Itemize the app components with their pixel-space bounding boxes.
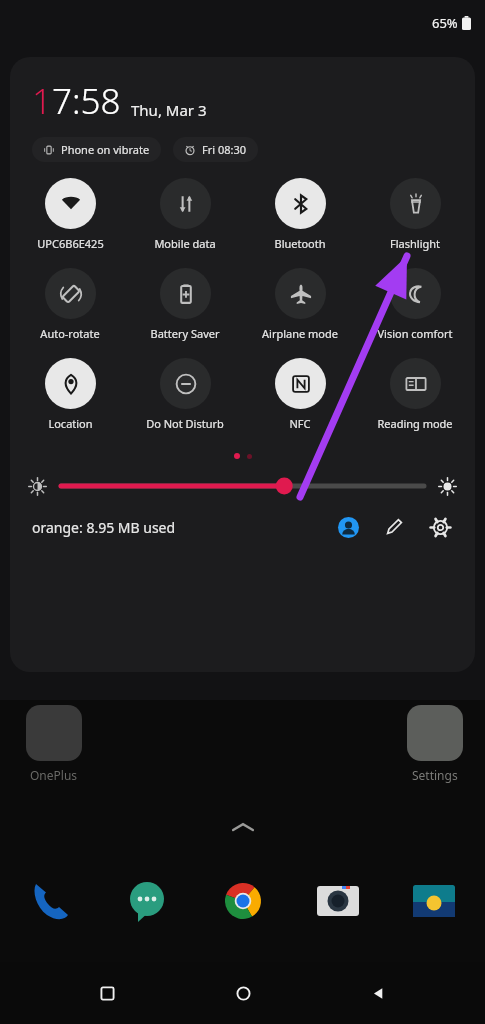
button[interactable] bbox=[407, 705, 463, 761]
staticText: NFC bbox=[289, 416, 311, 431]
staticText: 7:58 bbox=[52, 77, 121, 125]
staticText: Auto-rotate bbox=[40, 326, 100, 341]
staticText: Airplane mode bbox=[262, 326, 338, 341]
button[interactable]: Phone on vibrate bbox=[32, 137, 161, 162]
staticText: Do Not Disturb bbox=[146, 416, 224, 431]
staticText: UPC6B6E425 bbox=[37, 236, 104, 251]
button[interactable]: Airplane mode bbox=[245, 266, 355, 343]
button[interactable]: photos bbox=[405, 872, 463, 930]
staticText: Reading mode bbox=[377, 416, 453, 431]
staticText: Flashlight bbox=[390, 236, 440, 251]
button[interactable]: Auto-rotate bbox=[15, 266, 125, 343]
staticText: Location bbox=[48, 416, 93, 431]
button[interactable]: messages bbox=[118, 872, 176, 930]
button[interactable] bbox=[61, 476, 424, 496]
button[interactable]: phone bbox=[22, 872, 80, 930]
button[interactable]: Recent apps bbox=[79, 965, 135, 1021]
staticText: 65% bbox=[432, 14, 458, 32]
staticText: Mobile data bbox=[154, 236, 216, 251]
button[interactable]: Battery Saver bbox=[130, 266, 240, 343]
button[interactable]: Settings bbox=[423, 510, 457, 544]
staticText: OnePlus bbox=[30, 767, 78, 783]
staticText: Battery Saver bbox=[150, 326, 220, 341]
button[interactable]: camera bbox=[309, 872, 367, 930]
button[interactable]: Fri 08:30 bbox=[173, 137, 258, 162]
button[interactable]: Back bbox=[350, 965, 406, 1021]
staticText: Phone on vibrate bbox=[61, 142, 150, 157]
button[interactable]: Mobile data bbox=[130, 176, 240, 253]
staticText: Settings bbox=[412, 767, 458, 783]
button[interactable]: Home bbox=[215, 965, 271, 1021]
button[interactable]: Vision comfort bbox=[360, 266, 470, 343]
staticText: Thu, Mar 3 bbox=[131, 100, 207, 120]
button[interactable]: Reading mode bbox=[360, 356, 470, 433]
button[interactable]: Do Not Disturb bbox=[130, 356, 240, 433]
button[interactable] bbox=[26, 705, 82, 761]
button[interactable]: Edit tiles bbox=[377, 510, 411, 544]
button[interactable]: User account bbox=[331, 510, 365, 544]
button[interactable]: Open app drawer bbox=[230, 820, 256, 834]
staticText: orange: 8.95 MB used bbox=[32, 518, 176, 537]
staticText: Fri 08:30 bbox=[202, 142, 247, 157]
button[interactable]: NFC bbox=[245, 356, 355, 433]
button[interactable]: UPC6B6E425 bbox=[15, 176, 125, 253]
staticText: 1 bbox=[32, 77, 52, 125]
button[interactable]: Flashlight bbox=[360, 176, 470, 253]
button[interactable]: Bluetooth bbox=[245, 176, 355, 253]
button[interactable]: Location bbox=[15, 356, 125, 433]
staticText: Bluetooth bbox=[274, 236, 326, 251]
button[interactable]: chrome bbox=[214, 872, 272, 930]
staticText: Vision comfort bbox=[377, 326, 453, 341]
